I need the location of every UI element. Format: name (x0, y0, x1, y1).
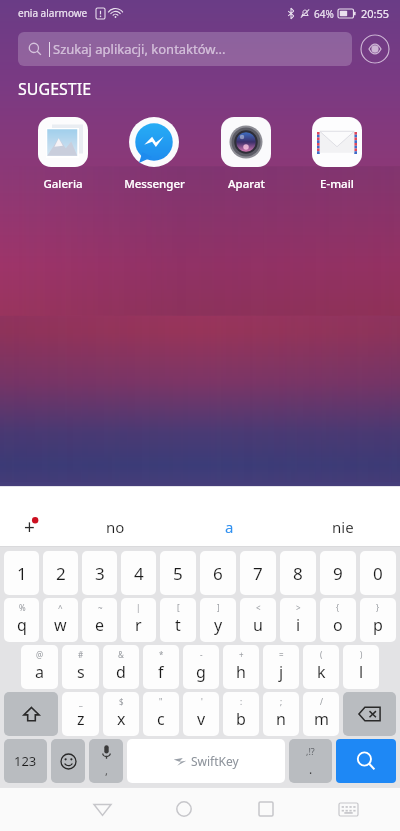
button[interactable]: nie (286, 508, 400, 546)
button[interactable]: Home (162, 787, 206, 831)
staticText: Galeria (43, 176, 83, 192)
staticText: 123 (14, 752, 37, 770)
staticText: ] (217, 602, 220, 613)
staticText: SUGESTIE (18, 78, 92, 100)
button[interactable]: a (172, 508, 286, 546)
button[interactable]: Lens scan (360, 34, 390, 64)
staticText: t (175, 614, 181, 636)
staticText: , (105, 763, 108, 778)
button[interactable]: / (303, 692, 339, 736)
staticText: i (296, 614, 301, 636)
button[interactable]: - (183, 645, 219, 689)
button[interactable]: 7 (240, 551, 276, 595)
staticText: m (314, 708, 329, 730)
button[interactable]: # (62, 645, 99, 689)
staticText: ' (201, 696, 203, 707)
staticText: : (240, 696, 243, 707)
button[interactable]: 8 (280, 551, 316, 595)
button[interactable]: Emoji (51, 739, 85, 783)
button[interactable]: ~ (82, 598, 117, 642)
button[interactable]: Messenger (113, 114, 195, 194)
button[interactable]: Back (80, 787, 124, 831)
staticText: ( (320, 649, 323, 660)
staticText: % (19, 602, 26, 613)
button[interactable]: ' (183, 692, 219, 736)
button[interactable]: Szukaj aplikacji, kontaktów... (18, 32, 352, 66)
button[interactable]: @ (21, 645, 58, 689)
button[interactable]: 0 (360, 551, 396, 595)
button[interactable]: ,!? (289, 739, 332, 783)
staticText: E-mail (320, 176, 354, 192)
staticText: r (135, 614, 142, 636)
button[interactable]: = (263, 645, 299, 689)
button[interactable]: Shift (4, 692, 58, 736)
staticText: . (309, 761, 313, 777)
button[interactable]: [ (160, 598, 196, 642)
staticText: 4 (134, 562, 144, 585)
staticText: 64% (314, 7, 334, 21)
staticText: ~ (98, 602, 103, 613)
staticText: @ (36, 649, 44, 660)
button[interactable]: 123 (4, 739, 47, 783)
button[interactable]: $ (103, 692, 139, 736)
button[interactable]: Aparat (205, 114, 287, 194)
button[interactable]: 9 (320, 551, 356, 595)
staticText: - (200, 649, 203, 660)
staticText: | (136, 602, 141, 613)
button[interactable]: Recents (244, 787, 288, 831)
button[interactable]: _ (62, 692, 99, 736)
staticText: 9 (333, 562, 343, 585)
staticText: 0 (373, 562, 383, 585)
staticText: ) (360, 649, 363, 660)
button[interactable]: E-mail (296, 114, 378, 194)
button[interactable]: 4 (121, 551, 156, 595)
staticText: n (276, 708, 286, 730)
staticText: x (117, 708, 126, 730)
staticText: = (279, 649, 284, 660)
button[interactable]: 2 (43, 551, 78, 595)
button[interactable]: 6 (200, 551, 236, 595)
button[interactable]: < (240, 598, 276, 642)
button[interactable]: 5 (160, 551, 196, 595)
staticText: l (359, 661, 364, 683)
button[interactable]: + (223, 645, 259, 689)
button[interactable]: ] (200, 598, 236, 642)
staticText: Messenger (124, 176, 185, 192)
button[interactable]: > (280, 598, 316, 642)
button[interactable]: ( (303, 645, 339, 689)
button[interactable]: } (360, 598, 396, 642)
staticText: h (236, 661, 246, 683)
button[interactable]: : (223, 692, 259, 736)
button[interactable]: Search (336, 739, 396, 783)
staticText: k (317, 661, 326, 683)
button[interactable]: 1 (4, 551, 39, 595)
staticText: j (279, 661, 284, 683)
button[interactable]: Add clipboard (0, 508, 58, 546)
button[interactable]: * (143, 645, 179, 689)
button[interactable]: Backspace (343, 692, 396, 736)
staticText: [ (177, 602, 180, 613)
button[interactable]: ; (263, 692, 299, 736)
button[interactable]: & (103, 645, 139, 689)
button[interactable]: | (121, 598, 156, 642)
button[interactable]: Voice input (89, 739, 123, 783)
staticText: a (225, 517, 234, 537)
button[interactable]: Space (127, 739, 285, 783)
staticText: > (296, 602, 301, 613)
button[interactable]: % (4, 598, 39, 642)
button[interactable]: " (143, 692, 179, 736)
button[interactable]: ^ (43, 598, 78, 642)
staticText: 5 (173, 562, 183, 585)
staticText: q (17, 614, 27, 636)
button[interactable]: Galeria (22, 114, 104, 194)
button[interactable]: no (58, 508, 172, 546)
button[interactable]: ) (343, 645, 379, 689)
staticText: & (118, 649, 124, 660)
staticText: 6 (213, 562, 223, 585)
staticText: ; (280, 696, 283, 707)
staticText: e (95, 614, 105, 636)
button[interactable]: Hide keyboard (326, 787, 370, 831)
button[interactable]: { (320, 598, 356, 642)
button[interactable]: 3 (82, 551, 117, 595)
staticText: enia alarmowe (18, 6, 88, 20)
